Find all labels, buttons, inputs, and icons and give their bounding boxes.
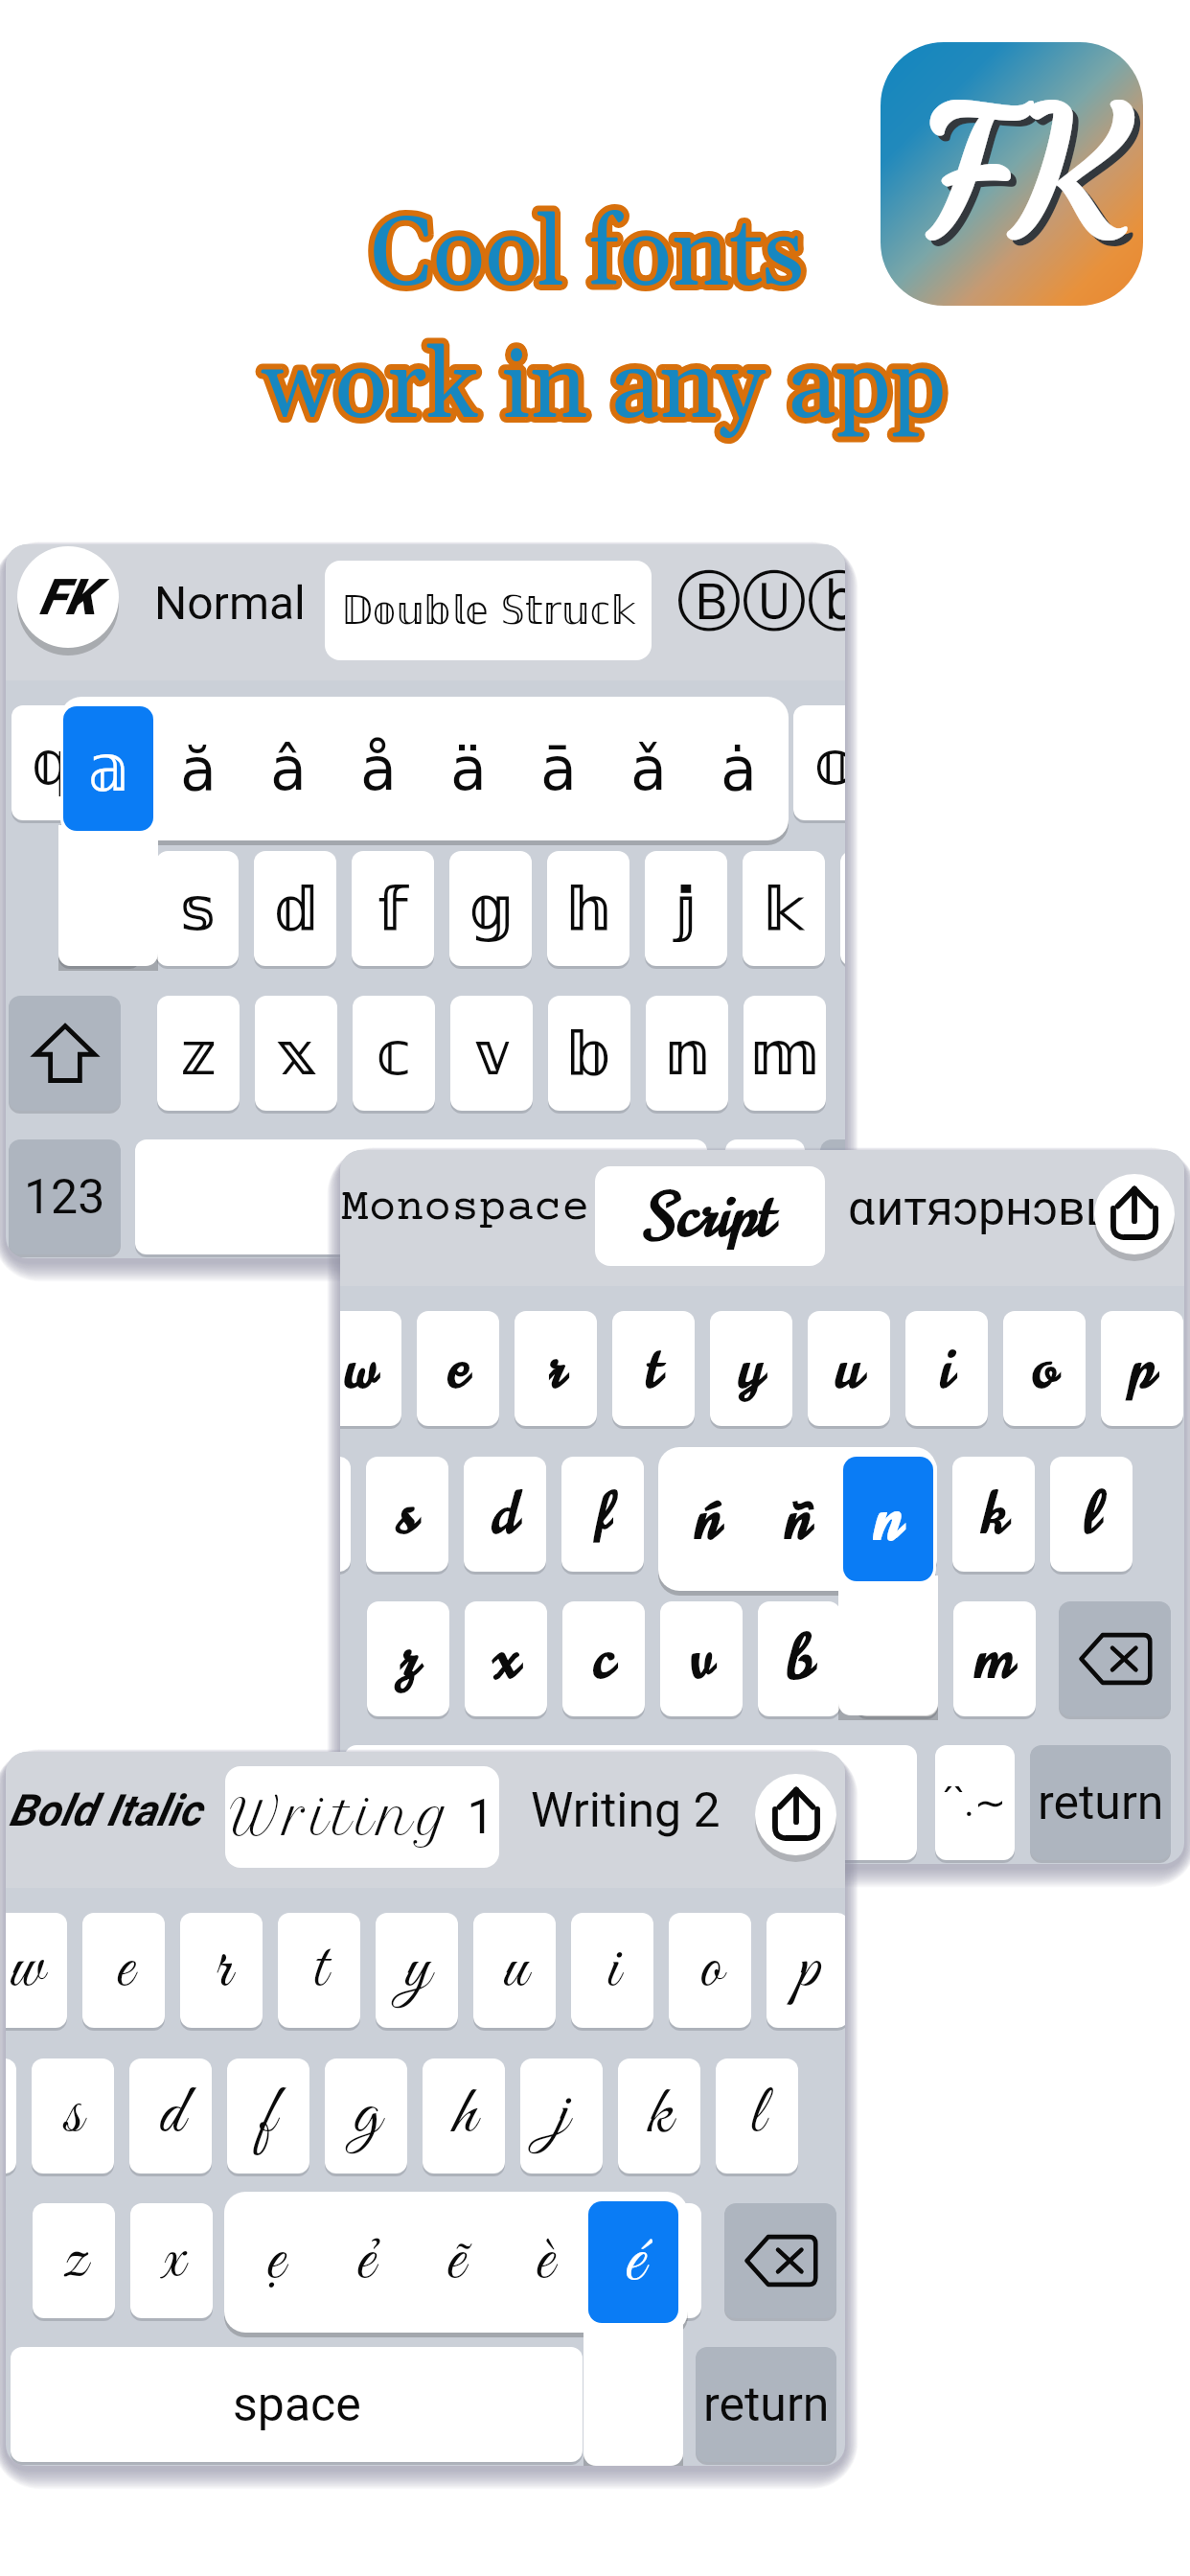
- button[interactable]: 𝕞: [744, 996, 826, 1111]
- button[interactable]: f: [561, 1457, 644, 1572]
- button[interactable]: Backspace: [724, 2203, 836, 2318]
- button[interactable]: p: [767, 1913, 845, 2028]
- button[interactable]: Shift: [9, 996, 121, 1111]
- button[interactable]: 𝕚: [696, 705, 778, 820]
- button[interactable]: j: [520, 2058, 603, 2173]
- button[interactable]: 𝕢: [11, 705, 94, 820]
- button[interactable]: 𝕕: [254, 851, 336, 966]
- button[interactable]: r: [180, 1913, 263, 2028]
- button[interactable]: k: [618, 2058, 700, 2173]
- button[interactable]: Fonts Keyboard: [17, 546, 119, 648]
- button[interactable]: 𝕣: [305, 705, 387, 820]
- button[interactable]: Share: [755, 1774, 836, 1855]
- button[interactable]: y: [376, 1913, 458, 2028]
- button[interactable]: 𝕔: [353, 996, 435, 1111]
- button[interactable]: a: [340, 1457, 351, 1572]
- button[interactable]: b: [423, 2203, 506, 2318]
- button[interactable]: 𝕓: [548, 996, 630, 1111]
- button[interactable]: Normal: [149, 553, 310, 653]
- button[interactable]: u: [808, 1311, 890, 1426]
- button[interactable]: 𝕧: [450, 996, 533, 1111]
- button[interactable]: c: [562, 1601, 645, 1716]
- button[interactable]: 𝕝: [840, 851, 845, 966]
- button[interactable]: d: [129, 2058, 212, 2173]
- button[interactable]: y: [710, 1311, 792, 1426]
- button[interactable]: g: [659, 1457, 742, 1572]
- button[interactable]: h: [757, 1457, 839, 1572]
- button[interactable]: 𝕙: [547, 851, 629, 966]
- button[interactable]: x: [130, 2203, 213, 2318]
- button[interactable]: h: [423, 2058, 505, 2173]
- button[interactable]: d: [464, 1457, 546, 1572]
- button[interactable]: Fonts Keyboard app icon: [881, 42, 1143, 306]
- button[interactable]: Numbers: [9, 1139, 121, 1254]
- button[interactable]: Backspace: [1059, 1601, 1171, 1716]
- button[interactable]: f: [227, 2058, 309, 2173]
- button[interactable]: 𝕨: [109, 705, 192, 820]
- button[interactable]: ɑитяɔрнɔвцт: [848, 1159, 1184, 1258]
- button[interactable]: Monospace: [340, 1159, 605, 1258]
- button[interactable]: Writing 2: [531, 1760, 722, 1860]
- button[interactable]: 𝕩: [255, 996, 337, 1111]
- button[interactable]: 𝕛: [645, 851, 727, 966]
- button[interactable]: ˊˋ.∼: [725, 1139, 805, 1254]
- button[interactable]: Share: [1094, 1174, 1175, 1254]
- button[interactable]: o: [669, 1913, 751, 2028]
- button[interactable]: Script: [595, 1166, 825, 1266]
- button[interactable]: 𝔻𝕠𝕦𝕓𝕝𝕖 𝕊𝕥𝕣𝕦𝕔𝕜: [325, 561, 652, 660]
- button[interactable]: x: [465, 1601, 547, 1716]
- button[interactable]: 𝕥: [402, 705, 485, 820]
- button[interactable]: 𝕜: [743, 851, 825, 966]
- button[interactable]: Return: [1030, 1745, 1171, 1860]
- button[interactable]: 𝕟: [646, 996, 728, 1111]
- button[interactable]: p: [1101, 1311, 1183, 1426]
- button[interactable]: z: [367, 1601, 449, 1716]
- button[interactable]: 𝕠: [793, 705, 845, 820]
- button[interactable]: w: [340, 1311, 401, 1426]
- button[interactable]: z: [33, 2203, 115, 2318]
- button[interactable]: o: [1003, 1311, 1086, 1426]
- button[interactable]: 𝕦: [598, 705, 680, 820]
- button[interactable]: 𝕖: [207, 705, 289, 820]
- button[interactable]: k: [952, 1457, 1035, 1572]
- button[interactable]: i: [571, 1913, 653, 2028]
- button[interactable]: s: [32, 2058, 114, 2173]
- button[interactable]: l: [1050, 1457, 1133, 1572]
- button[interactable]: v: [326, 2203, 408, 2318]
- button[interactable]: 𝕪: [500, 705, 583, 820]
- button[interactable]: Writing: [225, 1766, 499, 1868]
- button[interactable]: m: [953, 1601, 1036, 1716]
- button[interactable]: 𝕘: [449, 851, 532, 966]
- button[interactable]: w: [6, 1913, 67, 2028]
- button[interactable]: e: [417, 1311, 499, 1426]
- button[interactable]: l: [716, 2058, 798, 2173]
- button[interactable]: m: [619, 2203, 701, 2318]
- button[interactable]: 𝕤: [156, 851, 239, 966]
- button[interactable]: 𝕗: [352, 851, 434, 966]
- button[interactable]: n: [521, 2203, 604, 2318]
- button[interactable]: v: [660, 1601, 743, 1716]
- button[interactable]: g: [325, 2058, 407, 2173]
- button[interactable]: c: [228, 2203, 310, 2318]
- button[interactable]: n: [856, 1601, 938, 1716]
- button[interactable]: 𝕫: [157, 996, 240, 1111]
- button[interactable]: Return: [820, 1139, 845, 1254]
- button[interactable]: r: [515, 1311, 597, 1426]
- button[interactable]: Space: [11, 2347, 583, 2462]
- button[interactable]: t: [612, 1311, 695, 1426]
- button[interactable]: u: [473, 1913, 556, 2028]
- button[interactable]: e: [82, 1913, 165, 2028]
- button[interactable]: a: [6, 2058, 16, 2173]
- button[interactable]: 𝕒: [58, 851, 141, 966]
- button[interactable]: b: [758, 1601, 840, 1716]
- button[interactable]: ˊˋ.∼: [935, 1745, 1015, 1860]
- button[interactable]: Space: [135, 1139, 707, 1254]
- button[interactable]: j: [855, 1457, 937, 1572]
- button[interactable]: t: [278, 1913, 360, 2028]
- button[interactable]: Return: [696, 2347, 836, 2462]
- button[interactable]: i: [905, 1311, 988, 1426]
- button[interactable]: s: [366, 1457, 448, 1572]
- button[interactable]: Space: [345, 1745, 917, 1860]
- button[interactable]: ⒷⓊⓑⓑⓝ: [676, 553, 845, 653]
